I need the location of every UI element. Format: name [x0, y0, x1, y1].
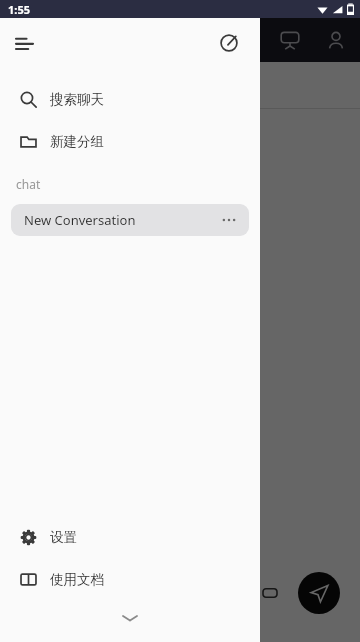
button[interactable]: 使用文档: [0, 558, 260, 600]
staticText: 设置: [50, 529, 77, 546]
button[interactable]: Send: [298, 572, 340, 614]
button[interactable]: Board: [280, 30, 300, 50]
button[interactable]: 新建分组: [0, 120, 260, 162]
button[interactable]: Collapse sidebar: [16, 28, 46, 58]
button[interactable]: 设置: [0, 516, 260, 558]
staticText: 使用文档: [50, 571, 104, 588]
staticText: chat: [16, 176, 41, 192]
button[interactable]: 搜索聊天: [0, 78, 260, 120]
button[interactable]: Expand: [0, 600, 260, 636]
button[interactable]: Regenerate: [256, 579, 284, 607]
button[interactable]: Profile: [326, 30, 346, 50]
button[interactable]: New chat: [214, 28, 244, 58]
staticText: 1:55: [8, 2, 30, 17]
button[interactable]: New Conversation: [11, 204, 249, 236]
staticText: New Conversation: [24, 211, 219, 229]
other: More options: [219, 210, 239, 230]
button[interactable]: Chats: [234, 30, 254, 50]
staticText: 新建分组: [50, 133, 104, 150]
staticText: 搜索聊天: [50, 91, 104, 108]
